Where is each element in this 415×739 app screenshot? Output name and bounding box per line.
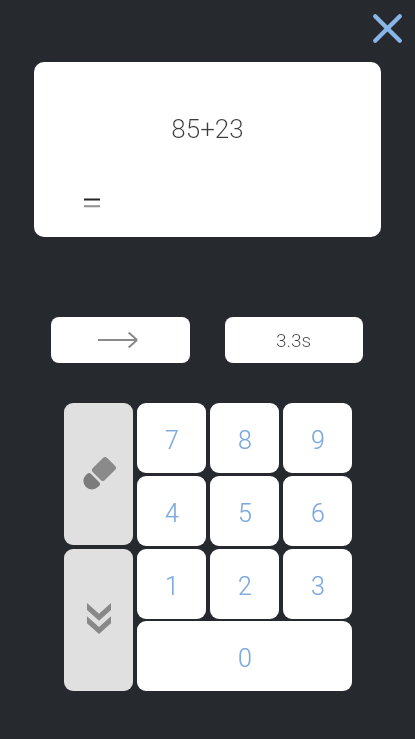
staticText: 9 [311, 426, 325, 455]
staticText: 5 [238, 499, 252, 528]
button[interactable]: Close [362, 3, 410, 51]
button[interactable]: 8 [210, 403, 279, 473]
button[interactable]: 5 [210, 476, 279, 546]
button[interactable]: 0 [137, 621, 352, 691]
button[interactable]: Erase [64, 403, 133, 545]
button[interactable]: 6 [283, 476, 352, 546]
button[interactable]: 1 [137, 549, 206, 619]
staticText: 7 [165, 426, 179, 455]
staticText: 6 [311, 499, 325, 528]
button[interactable]: Scroll down [64, 549, 133, 691]
button[interactable]: 7 [137, 403, 206, 473]
staticText: 4 [165, 499, 179, 528]
button[interactable]: 2 [210, 549, 279, 619]
staticText: 0 [238, 644, 252, 673]
button[interactable]: 9 [283, 403, 352, 473]
staticText: 8 [238, 426, 252, 455]
button[interactable]: Next [51, 317, 190, 363]
staticText: 3 [311, 572, 325, 601]
button[interactable]: 3 [283, 549, 352, 619]
staticText: 3.3s [276, 329, 312, 351]
staticText: 2 [238, 572, 252, 601]
button[interactable]: 3.3s [225, 317, 363, 363]
button[interactable]: 4 [137, 476, 206, 546]
staticText: 1 [165, 572, 179, 601]
staticText: 85+23 [34, 114, 381, 144]
